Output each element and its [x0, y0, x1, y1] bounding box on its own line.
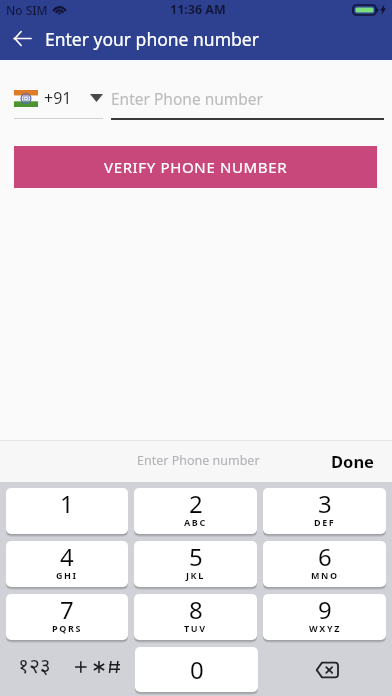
staticText: Enter your phone number	[45, 27, 259, 51]
staticText: 1	[60, 488, 74, 520]
button[interactable]: Symbols	[68, 647, 129, 692]
staticText: 11:36 AM	[170, 1, 226, 18]
button[interactable]: Back	[0, 19, 43, 60]
staticText: ABC	[184, 516, 207, 528]
button[interactable]: 5	[134, 541, 257, 587]
button[interactable]: 3	[263, 488, 386, 534]
staticText: 4	[60, 541, 74, 573]
button[interactable]: 6	[263, 541, 386, 587]
button[interactable]: 2	[134, 488, 257, 534]
staticText: +91	[44, 87, 72, 109]
staticText: JKL	[186, 569, 205, 581]
button[interactable]: Done	[320, 441, 392, 482]
button[interactable]: Delete	[264, 647, 386, 692]
staticText: WXYZ	[309, 622, 341, 634]
staticText: VERIFY PHONE NUMBER	[104, 157, 288, 177]
staticText: Enter Phone number	[111, 88, 263, 109]
staticText: 8	[189, 594, 203, 626]
button[interactable]: 0	[135, 647, 258, 692]
staticText: 0	[190, 653, 204, 686]
staticText: १२३	[18, 651, 51, 680]
staticText: 9	[318, 594, 332, 626]
button[interactable]: 9	[263, 594, 386, 640]
staticText: 7	[60, 594, 74, 626]
button[interactable]: 7	[6, 594, 128, 640]
staticText: DEF	[314, 516, 336, 528]
button[interactable]: 4	[6, 541, 128, 587]
button[interactable]: Devanagari digits	[6, 647, 68, 692]
staticText: TUV	[184, 622, 207, 634]
staticText: 3	[318, 488, 332, 520]
button[interactable]: 8	[134, 594, 257, 640]
staticText: No SIM	[6, 2, 48, 18]
staticText: MNO	[311, 569, 339, 581]
staticText: GHI	[56, 569, 78, 581]
button[interactable]: 1	[6, 488, 128, 534]
staticText: Done	[331, 450, 374, 472]
staticText: 6	[318, 541, 332, 573]
staticText: Enter Phone number	[137, 452, 260, 469]
staticText: 2	[189, 488, 203, 520]
staticText: 5	[189, 541, 203, 573]
staticText: PQRS	[52, 622, 82, 634]
button[interactable]: VERIFY PHONE NUMBER	[14, 146, 377, 188]
